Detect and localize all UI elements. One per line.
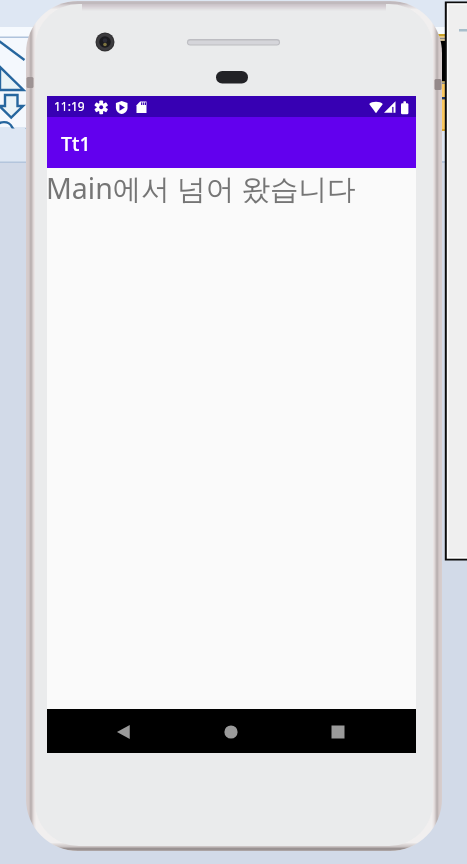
staticText: 11:19 — [54, 98, 85, 114]
button[interactable]: Back — [104, 712, 144, 752]
staticText: Main에서 넘어 왔습니다 — [46, 169, 356, 208]
staticText: Tt1 — [61, 130, 91, 157]
button[interactable]: Recents — [318, 712, 358, 752]
button[interactable]: Tt1 — [47, 117, 416, 168]
button[interactable]: Home — [211, 712, 251, 752]
